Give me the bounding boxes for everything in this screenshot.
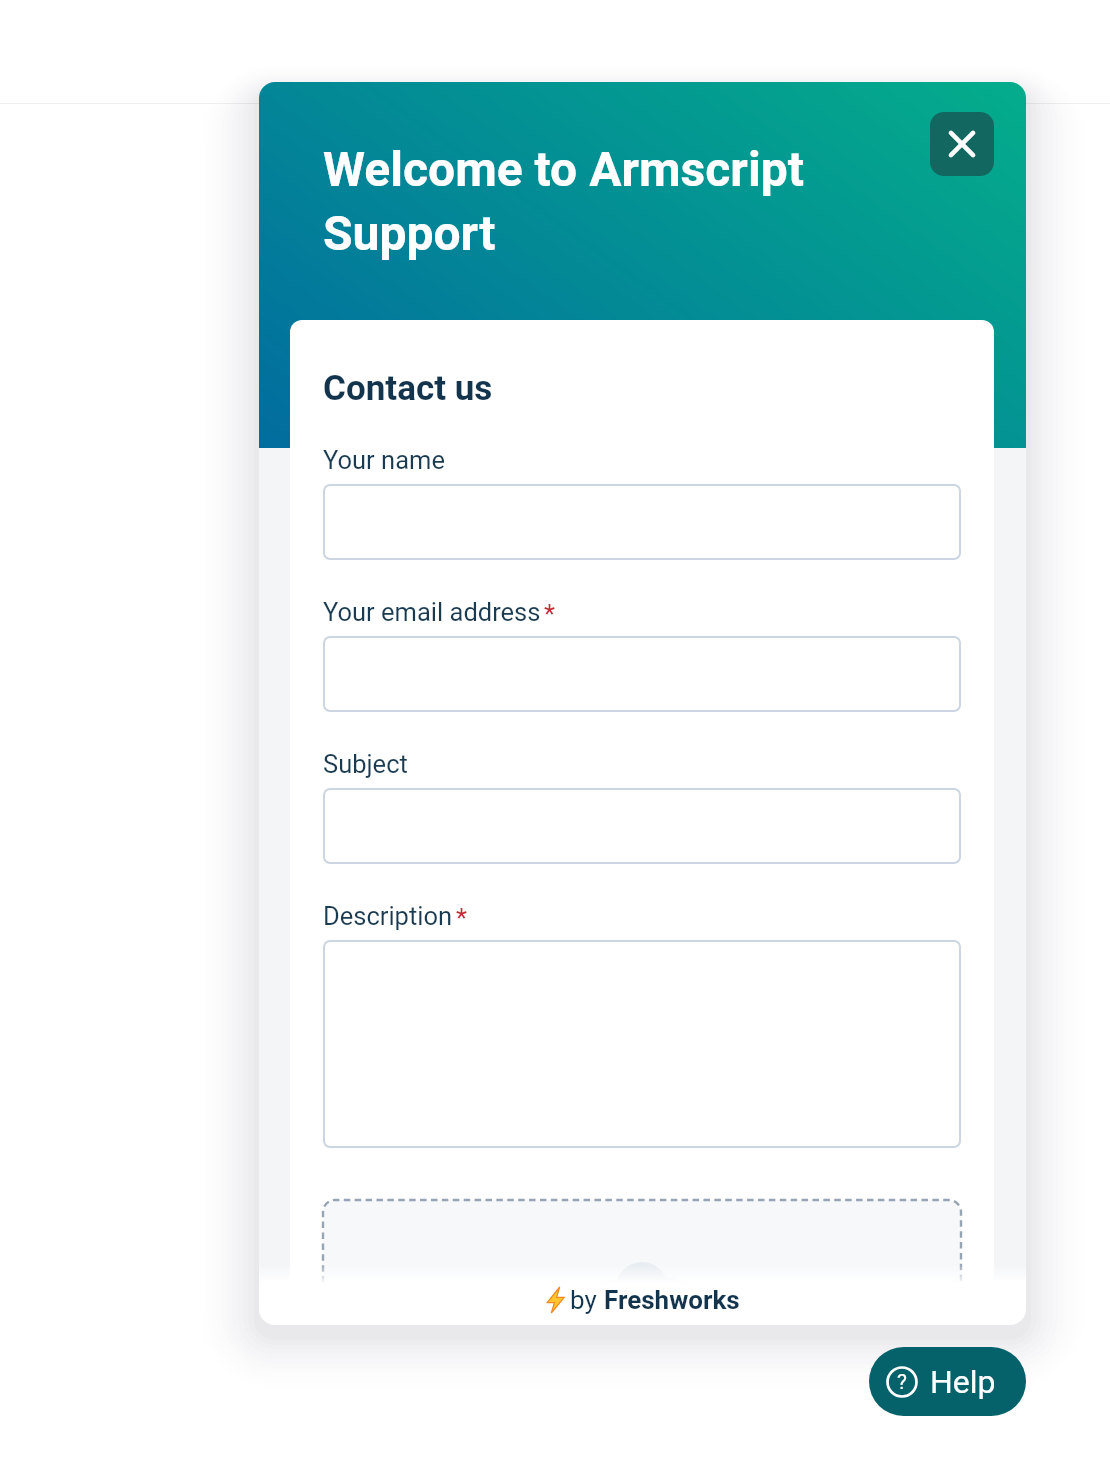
button[interactable]: ? bbox=[869, 1347, 1026, 1416]
staticText: Your name bbox=[323, 445, 445, 475]
staticText: Description bbox=[323, 901, 453, 931]
button[interactable] bbox=[323, 484, 961, 560]
staticText: Welcome to Armscript Support bbox=[323, 141, 883, 262]
staticText: Subject bbox=[323, 749, 408, 779]
staticText: Your email address bbox=[323, 597, 541, 627]
button[interactable] bbox=[323, 636, 961, 712]
button[interactable] bbox=[323, 940, 961, 1148]
staticText: Freshworks bbox=[604, 1285, 740, 1315]
staticText: by bbox=[570, 1285, 604, 1315]
staticText: ? bbox=[897, 1370, 907, 1395]
staticText: * bbox=[544, 599, 555, 629]
button[interactable]: Close bbox=[930, 112, 994, 176]
staticText: * bbox=[456, 903, 467, 933]
button[interactable] bbox=[323, 788, 961, 864]
staticText: Help bbox=[930, 1363, 996, 1401]
staticText: Contact us bbox=[323, 368, 493, 409]
